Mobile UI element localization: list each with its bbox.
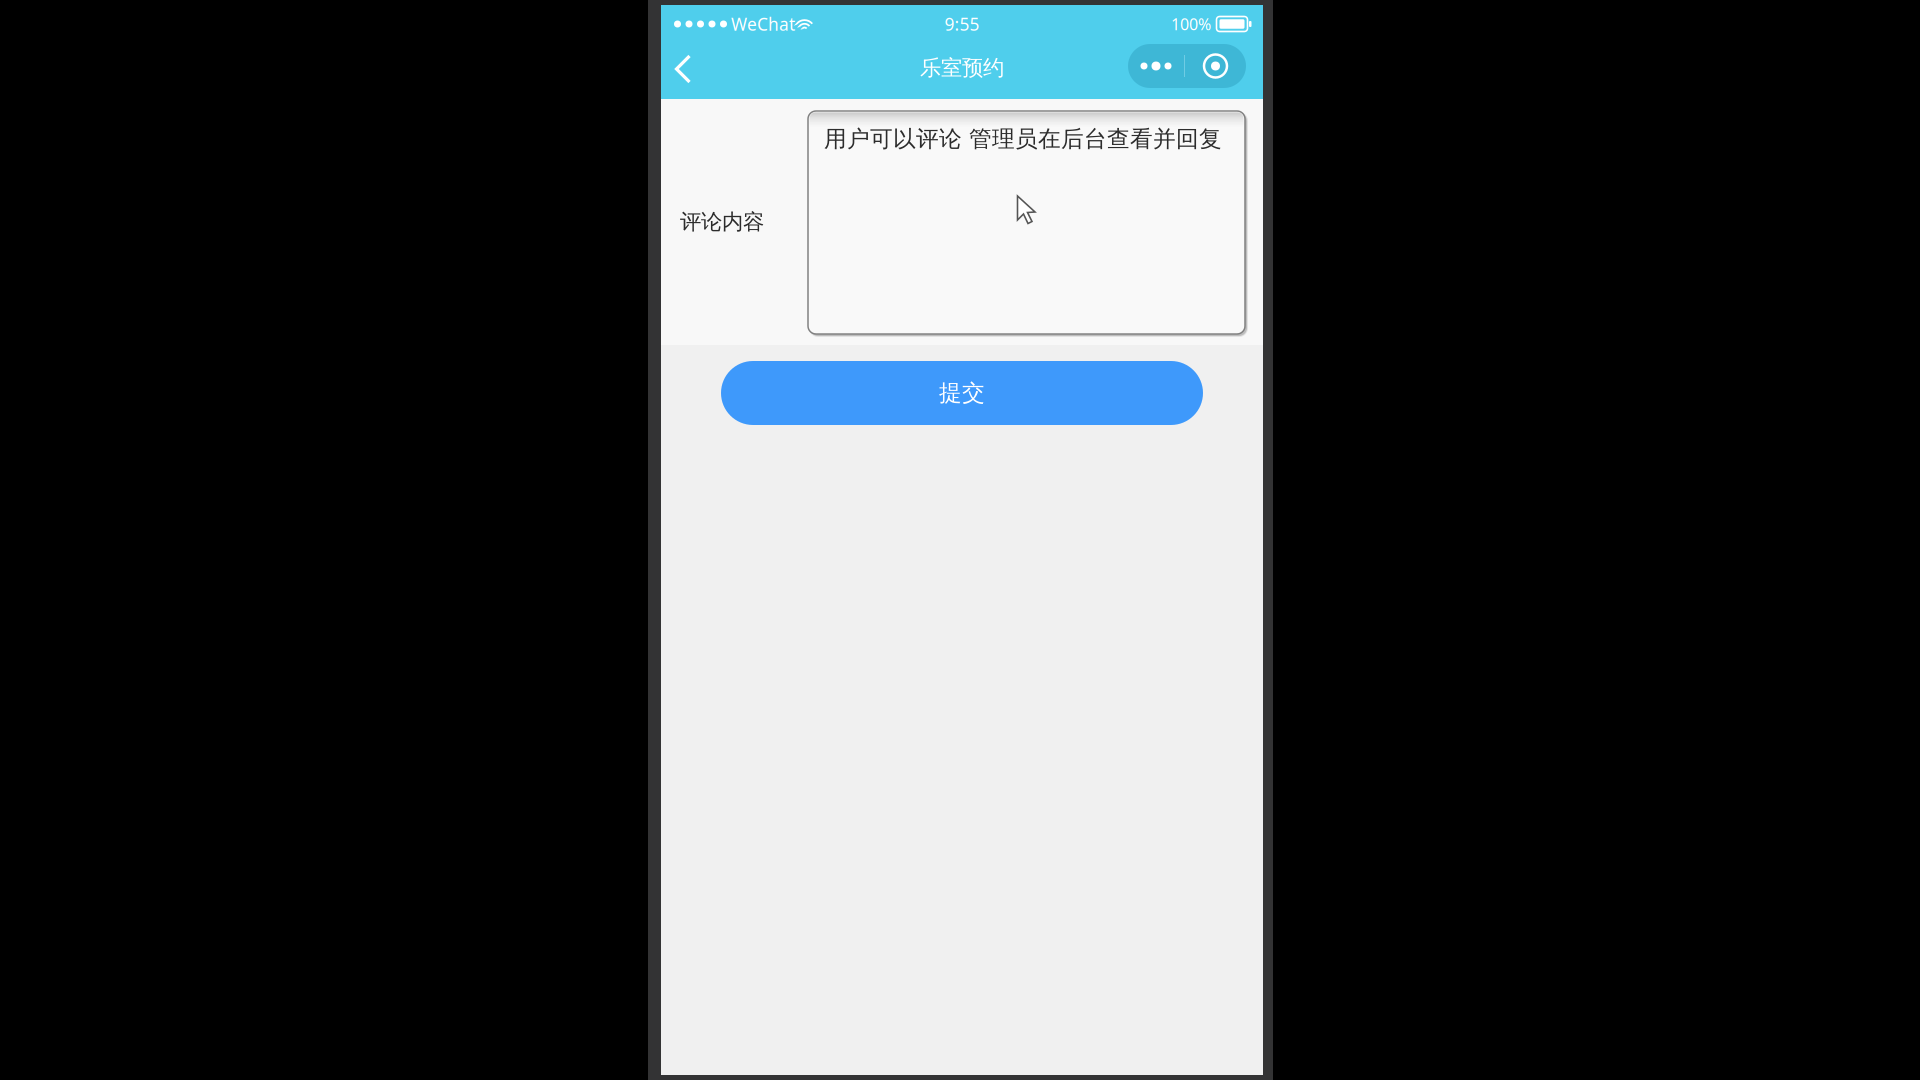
button[interactable]: Back bbox=[674, 44, 718, 88]
button[interactable]: Close mini program bbox=[1185, 44, 1246, 88]
button[interactable]: More options bbox=[1128, 44, 1184, 88]
staticText: 提交 bbox=[939, 379, 985, 407]
staticText: 9:55 bbox=[944, 12, 979, 35]
staticText: 乐室预约 bbox=[920, 55, 1004, 81]
button[interactable]: 提交 bbox=[721, 361, 1203, 425]
staticText: WeChat bbox=[731, 12, 795, 35]
staticText: 评论内容 bbox=[680, 209, 764, 235]
staticText: 100% bbox=[1171, 13, 1211, 35]
staticText: 用户可以评论 管理员在后台查看并回复 bbox=[824, 125, 1222, 153]
button[interactable]: 评论内容 bbox=[808, 111, 1249, 338]
